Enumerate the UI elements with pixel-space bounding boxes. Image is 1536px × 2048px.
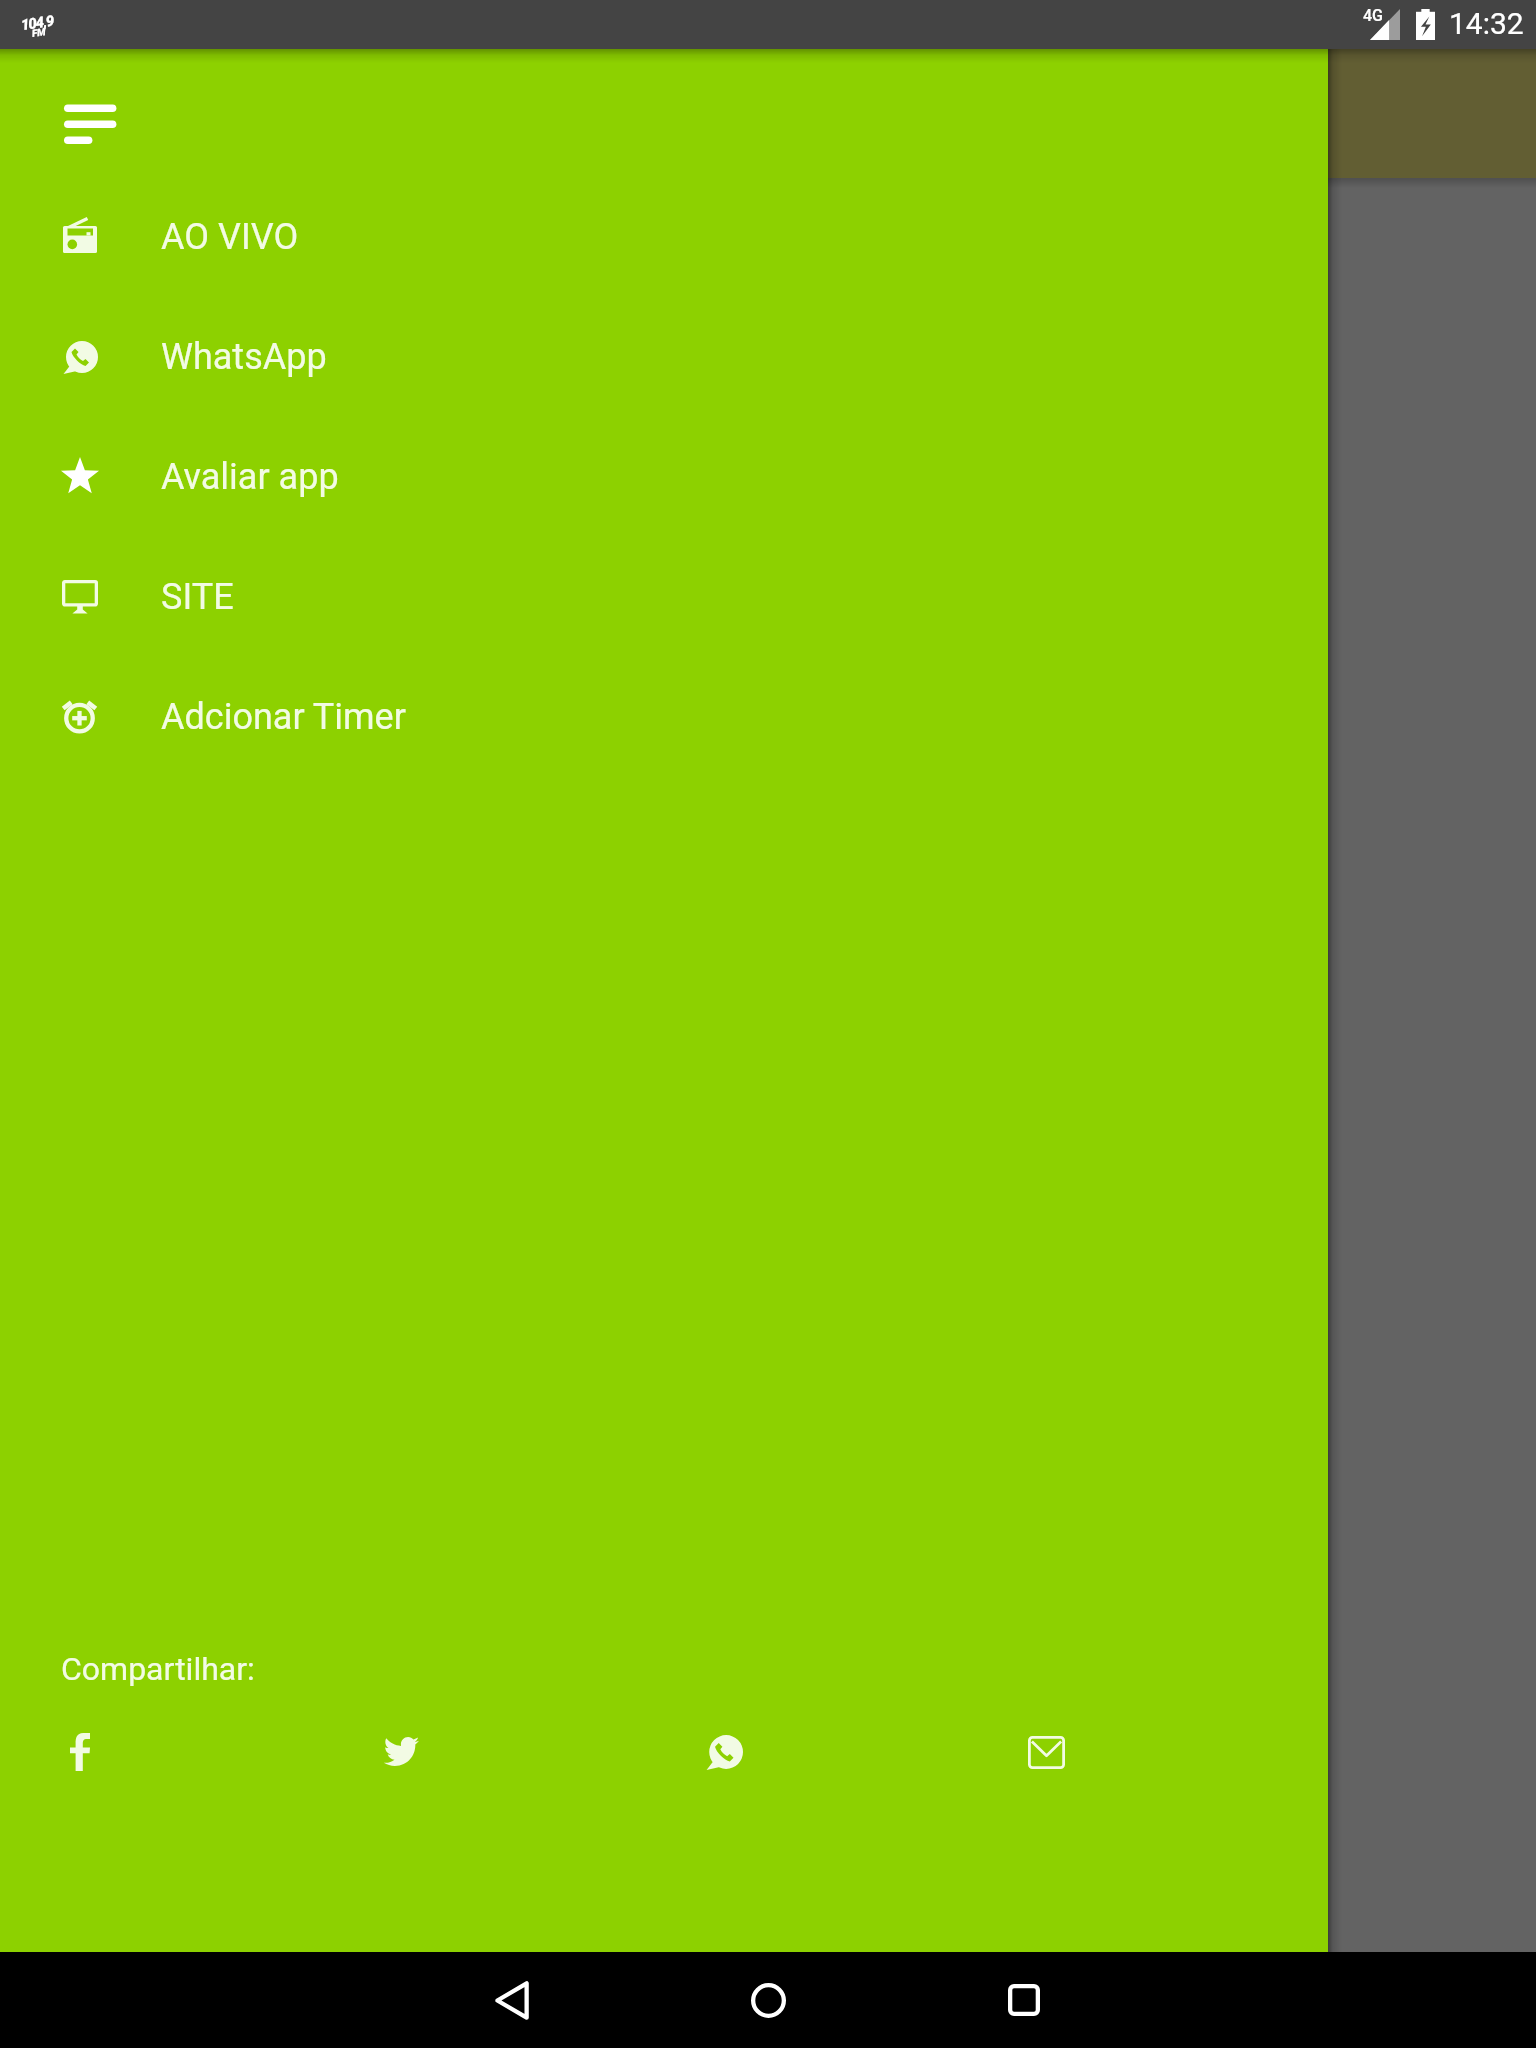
button[interactable]: Recent apps bbox=[980, 1956, 1068, 2044]
staticText: 4G bbox=[1363, 6, 1383, 25]
button[interactable]: Open navigation menu bbox=[42, 75, 138, 171]
staticText: Compartilhar: bbox=[61, 1650, 255, 1688]
button[interactable]: Back bbox=[468, 1956, 556, 2044]
staticText: FM bbox=[31, 26, 47, 40]
button[interactable]: Adcionar Timer bbox=[0, 657, 1328, 777]
button[interactable]: Home bbox=[724, 1956, 812, 2044]
staticText: 104,9 bbox=[20, 12, 55, 34]
button[interactable]: SITE bbox=[0, 537, 1328, 657]
button[interactable]: Share on Twitter bbox=[365, 1716, 437, 1788]
staticText: Adcionar Timer bbox=[161, 696, 406, 738]
staticText: Avaliar app bbox=[161, 456, 339, 498]
button[interactable]: Avaliar app bbox=[0, 417, 1328, 537]
button[interactable]: Share on WhatsApp bbox=[688, 1716, 760, 1788]
button[interactable]: AO VIVO bbox=[0, 177, 1328, 297]
button[interactable]: Share by Email bbox=[1010, 1716, 1082, 1788]
button[interactable]: Share on Facebook bbox=[44, 1716, 116, 1788]
staticText: 14:32 bbox=[1449, 6, 1524, 41]
staticText: WhatsApp bbox=[161, 336, 327, 378]
staticText: SITE bbox=[161, 576, 234, 618]
button[interactable]: WhatsApp bbox=[0, 297, 1328, 417]
staticText: AO VIVO bbox=[161, 216, 299, 258]
